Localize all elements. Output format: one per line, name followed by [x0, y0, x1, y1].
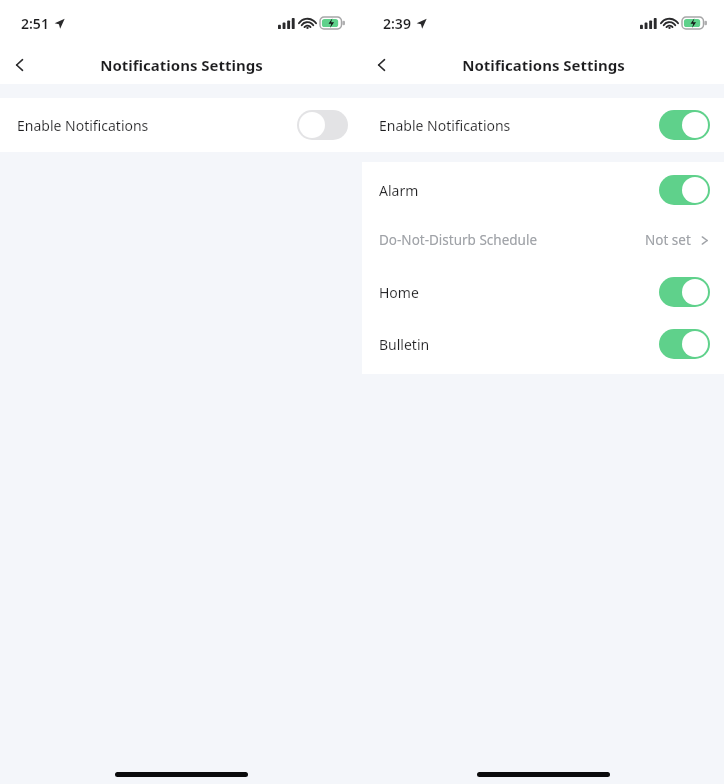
staticText: Bulletin — [379, 335, 430, 354]
staticText: 2:39 — [383, 14, 411, 33]
button[interactable]: Alarm — [362, 166, 724, 214]
button[interactable]: Do-Not-Disturb Schedule — [362, 214, 724, 266]
button[interactable]: Off — [297, 110, 348, 140]
staticText: Notifications Settings — [462, 55, 625, 75]
button[interactable]: Enable Notifications — [362, 98, 724, 152]
button[interactable]: Back — [0, 46, 40, 84]
staticText: Notifications Settings — [100, 55, 263, 75]
staticText: Enable Notifications — [17, 116, 149, 135]
button[interactable]: On — [659, 175, 710, 205]
button[interactable]: On — [659, 329, 710, 359]
staticText: Not set — [645, 231, 691, 249]
button[interactable]: On — [659, 110, 710, 140]
staticText: Do-Not-Disturb Schedule — [379, 231, 538, 249]
button[interactable]: Bulletin — [362, 318, 724, 370]
button[interactable]: Home — [362, 266, 724, 318]
staticText: 2:51 — [21, 14, 49, 33]
button[interactable]: Enable Notifications — [0, 98, 362, 152]
staticText: Home — [379, 283, 419, 302]
staticText: Enable Notifications — [379, 116, 511, 135]
button[interactable]: On — [659, 277, 710, 307]
button[interactable]: Back — [362, 46, 402, 84]
staticText: Alarm — [379, 181, 419, 200]
